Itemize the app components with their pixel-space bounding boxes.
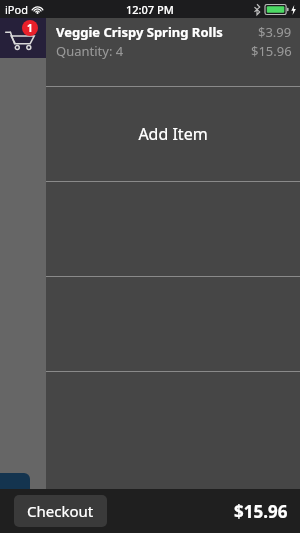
staticText: iPod xyxy=(5,2,28,17)
staticText: Add Item xyxy=(138,123,208,145)
staticText: $3.99 xyxy=(258,23,292,41)
staticText: $15.96 xyxy=(234,500,288,523)
staticText: Veggie Crispy Spring Rolls xyxy=(56,23,250,41)
button[interactable]: Veggie Crispy Spring Rolls xyxy=(46,18,300,86)
button[interactable]: Item tile xyxy=(0,473,30,512)
staticText: Checkout xyxy=(27,501,94,521)
staticText: 1 xyxy=(27,21,33,35)
staticText: $15.96 xyxy=(251,42,292,60)
staticText: Quantity: 4 xyxy=(56,42,251,60)
button[interactable] xyxy=(46,372,300,533)
button[interactable]: Checkout xyxy=(14,495,107,527)
staticText: 12:07 PM xyxy=(126,2,174,17)
button[interactable]: Add Item xyxy=(46,87,300,181)
button[interactable]: Cart xyxy=(0,18,46,58)
